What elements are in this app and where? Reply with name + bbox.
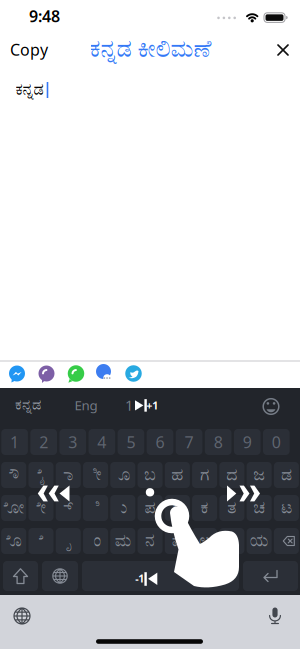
button[interactable]: ೊ (1, 528, 26, 554)
button[interactable]: ವ (165, 528, 190, 554)
staticText: ಟ (281, 499, 292, 516)
button[interactable]: ಸ (219, 528, 244, 554)
staticText: ವ (172, 532, 183, 549)
staticText: 3 (68, 431, 77, 453)
button[interactable]: ದ (219, 462, 244, 488)
button[interactable]: Next keyboard (13, 607, 31, 625)
staticText: ಬ (144, 466, 156, 483)
button[interactable]: ಲ (192, 528, 217, 554)
button[interactable]: ಬ (137, 462, 162, 488)
button[interactable]: WhatsApp (67, 364, 85, 382)
button[interactable]: ಹ (165, 462, 190, 488)
staticText: ಡ (281, 466, 292, 483)
button[interactable]: ೋ (1, 495, 26, 521)
button[interactable]: ಮ (110, 528, 135, 554)
staticText: ನ (145, 532, 155, 549)
staticText: 7 (185, 431, 194, 453)
staticText: ದ (226, 466, 237, 483)
staticText: Eng (74, 396, 97, 414)
button[interactable]: ಯ (247, 528, 272, 554)
button[interactable]: Shift (3, 561, 38, 591)
staticText: ಪ (144, 499, 155, 516)
button[interactable]: ೈ (28, 462, 53, 488)
staticText: 1 (10, 431, 19, 453)
staticText: 8 (214, 431, 223, 453)
button[interactable]: ನ (137, 528, 162, 554)
button[interactable]: Twitter (124, 364, 142, 382)
button[interactable]: Messages (95, 364, 114, 383)
button[interactable]: ೂ (110, 462, 135, 488)
staticText: 9:48 (29, 5, 60, 27)
button[interactable]: ಜ (247, 462, 272, 488)
staticText: ಗ (200, 466, 209, 483)
button[interactable]: ಪ (137, 495, 162, 521)
button[interactable]: ಟ (274, 495, 299, 521)
staticText: 5 (126, 431, 135, 453)
staticText: ಕ (201, 499, 209, 516)
staticText: ೌ (9, 466, 19, 483)
staticText: 2 (39, 431, 48, 453)
button[interactable]: ಗ (192, 462, 217, 488)
button[interactable]: ೆ (28, 528, 53, 554)
staticText: Copy (10, 39, 48, 60)
button[interactable]: Messenger (8, 364, 26, 382)
button[interactable]: ಡ (274, 462, 299, 488)
button[interactable]: ಿ (83, 495, 108, 521)
button[interactable]: 7 (176, 429, 202, 455)
staticText: ೊ (6, 532, 22, 549)
button[interactable]: Eng (68, 392, 104, 418)
button[interactable]: 5 (118, 429, 144, 455)
button[interactable]: Backspace (274, 528, 299, 554)
button[interactable]: 4 (88, 429, 115, 455)
button[interactable]: 8 (205, 429, 231, 455)
button[interactable]: ಂ (83, 528, 108, 554)
button[interactable]: Next keyboard (42, 561, 78, 591)
staticText: ಚ (253, 499, 265, 516)
staticText: ಲ (199, 532, 210, 549)
button[interactable]: 0 (263, 429, 290, 455)
button[interactable]: ೇ (28, 495, 53, 521)
staticText: ೃ (65, 532, 72, 549)
staticText: 9 (243, 431, 252, 453)
button[interactable]: ಕನ್ನಡ (6, 392, 50, 418)
button[interactable]: Copy (10, 39, 48, 60)
button[interactable]: ತ (219, 495, 244, 521)
button[interactable]: 9 (234, 429, 260, 455)
button[interactable]: 2 (30, 429, 57, 455)
button[interactable]: 6 (147, 429, 173, 455)
button[interactable]: ಾ (56, 462, 81, 488)
staticText: 4 (97, 431, 106, 453)
button[interactable]: Emoji (261, 396, 281, 416)
staticText: +1 (146, 398, 158, 412)
button[interactable]: Dictate (267, 606, 283, 624)
staticText: ೇ (36, 499, 46, 516)
staticText: ಯ (250, 532, 269, 549)
button[interactable]: ್ (56, 495, 81, 521)
button[interactable]: ು (110, 495, 135, 521)
button[interactable]: Numbers (119, 392, 139, 418)
staticText: 1 (125, 395, 133, 415)
button[interactable]: ಕ (192, 495, 217, 521)
button[interactable]: ೃ (56, 528, 81, 554)
staticText: ಮ (115, 532, 131, 549)
staticText: ೆ (38, 532, 43, 549)
button[interactable]: 3 (59, 429, 86, 455)
staticText: ು (118, 499, 128, 516)
staticText: ಕನ್ನಡ ಕೀಲಿಮಣೆ (89, 38, 211, 61)
staticText: ೀ (89, 466, 101, 483)
button[interactable]: ೀ (83, 462, 108, 488)
button[interactable]: ೌ (1, 462, 26, 488)
staticText: ಹ (171, 466, 183, 483)
button[interactable]: Close (275, 42, 290, 57)
button[interactable]: ರ (165, 495, 190, 521)
button[interactable]: Return (243, 561, 298, 591)
staticText: ಜ (253, 466, 265, 483)
button[interactable]: 1 (1, 429, 28, 455)
staticText: ್ (63, 499, 73, 516)
button[interactable]: ಚ (247, 495, 272, 521)
staticText: ತ (227, 499, 236, 516)
staticText: ಕನ್ನಡ (15, 82, 43, 98)
staticText: ಂ (89, 532, 101, 549)
button[interactable]: Space (82, 561, 239, 591)
button[interactable]: Viber (37, 364, 55, 382)
